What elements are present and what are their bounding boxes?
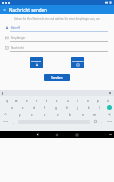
staticText: Betreff	[11, 26, 21, 30]
button[interactable]: Recent apps	[72, 131, 82, 138]
button[interactable]: c	[41, 111, 48, 118]
button[interactable]: o	[84, 97, 91, 104]
staticText: n	[82, 113, 84, 117]
button[interactable]: d	[30, 104, 37, 111]
button[interactable]: Back	[32, 131, 42, 138]
staticText: m	[93, 113, 96, 117]
staticText: v	[57, 113, 59, 117]
staticText: Nachricht senden	[9, 7, 47, 13]
button[interactable]: l	[96, 104, 103, 111]
staticText: e	[26, 99, 28, 103]
staticText: q	[6, 99, 8, 103]
staticText: p	[97, 99, 99, 103]
staticText: l	[99, 106, 100, 110]
button[interactable]: Betreff	[0, 25, 114, 32]
button[interactable]: Home	[52, 131, 62, 138]
button[interactable]: e	[23, 97, 30, 104]
staticText: Senden	[51, 76, 63, 80]
button[interactable]: p	[94, 97, 101, 104]
button[interactable]: Enter	[107, 105, 112, 110]
staticText: s	[22, 106, 24, 110]
button[interactable]: x	[28, 111, 35, 118]
button[interactable]: Empfänger	[0, 35, 114, 42]
staticText: c	[44, 113, 46, 117]
button[interactable]: Backspace	[104, 111, 114, 118]
button[interactable]: Senden	[44, 74, 70, 81]
staticText: b	[69, 113, 71, 117]
staticText: r	[36, 99, 38, 103]
staticText: j	[77, 106, 78, 110]
button[interactable]: g	[52, 104, 59, 111]
staticText: z	[56, 99, 58, 103]
staticText: y	[19, 113, 21, 117]
button[interactable]: f	[41, 104, 48, 111]
button[interactable]: s	[19, 104, 26, 111]
staticText: ?123	[107, 120, 112, 123]
staticText: f	[44, 106, 46, 110]
button[interactable]: a	[8, 104, 15, 111]
button[interactable]: b	[66, 111, 73, 118]
staticText: .	[101, 120, 102, 124]
button[interactable]: n	[79, 111, 86, 118]
staticText: o	[87, 99, 89, 103]
button[interactable]: Anhängen	[71, 57, 84, 68]
button[interactable]: j	[74, 104, 81, 111]
button[interactable]: ?123	[0, 118, 10, 125]
staticText: t	[46, 99, 48, 103]
button[interactable]: m	[91, 111, 98, 118]
button[interactable]: Shift	[0, 111, 10, 118]
button[interactable]: Nachricht	[0, 45, 114, 52]
staticText: g	[55, 106, 57, 110]
button[interactable]: w	[13, 97, 20, 104]
staticText: Nachricht	[11, 46, 24, 50]
button[interactable]: u	[64, 97, 71, 104]
staticText: d	[33, 106, 35, 110]
button[interactable]: t	[43, 97, 50, 104]
button[interactable]: y	[16, 111, 23, 118]
button[interactable]: ?123	[104, 118, 114, 125]
button[interactable]: v	[54, 111, 61, 118]
staticText: ,	[13, 120, 14, 124]
button[interactable]: r	[33, 97, 40, 104]
staticText: Kontakte	[31, 59, 42, 62]
staticText: x	[31, 113, 33, 117]
button[interactable]: z	[53, 97, 60, 104]
staticText: Empfänger	[11, 36, 26, 40]
staticText: h	[66, 106, 68, 110]
staticText: a	[11, 106, 13, 110]
button[interactable]: Comma	[10, 118, 16, 125]
staticText: ü	[107, 99, 109, 103]
staticText: Geben Sie Ihre Nachricht ein und wählen …	[12, 17, 102, 21]
button[interactable]: Kontakte	[30, 57, 43, 68]
button[interactable]: k	[85, 104, 92, 111]
button[interactable]: ü	[104, 97, 111, 104]
staticText: Anhängen	[72, 59, 84, 62]
staticText: u	[67, 99, 69, 103]
button[interactable]: q	[3, 97, 10, 104]
staticText: k	[88, 106, 90, 110]
button[interactable]: Navigate up	[0, 5, 9, 14]
staticText: i	[77, 99, 78, 103]
staticText: ?123	[3, 120, 8, 123]
button[interactable]: Emoji	[92, 118, 99, 125]
button[interactable]: h	[63, 104, 70, 111]
button[interactable]: i	[74, 97, 81, 104]
staticText: w	[15, 99, 18, 103]
